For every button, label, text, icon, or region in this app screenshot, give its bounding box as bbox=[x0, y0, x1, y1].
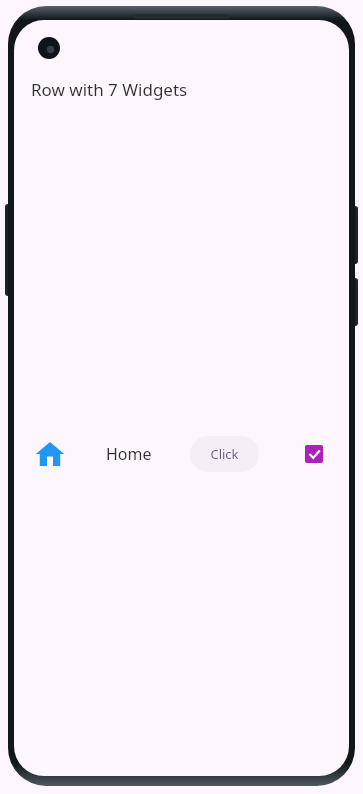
button[interactable]: Click bbox=[190, 436, 259, 472]
button[interactable]: Checkbox, checked bbox=[297, 437, 331, 471]
staticText: Click bbox=[210, 445, 239, 463]
button[interactable]: Home bbox=[106, 443, 152, 465]
staticText: Row with 7 Widgets bbox=[31, 78, 188, 101]
button[interactable]: Home bbox=[32, 436, 68, 472]
staticText: Home bbox=[106, 443, 152, 465]
